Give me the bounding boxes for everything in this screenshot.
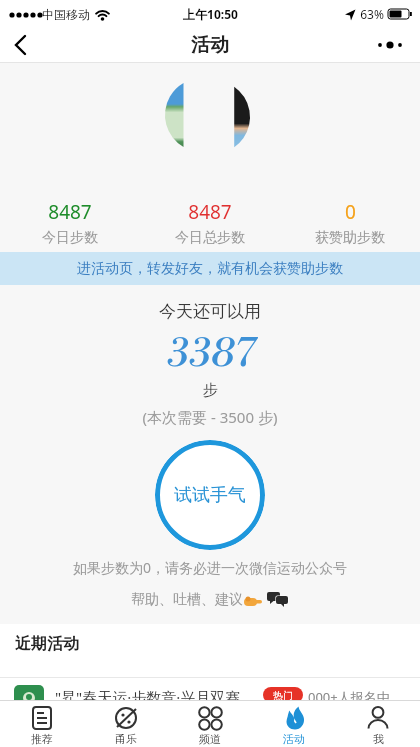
staticText: 进活动页，转发好友，就有机会获赞助步数 bbox=[77, 260, 343, 278]
staticText: 000+人报名中 bbox=[308, 688, 390, 706]
staticText: 0 bbox=[345, 199, 356, 225]
staticText: 近期活动 bbox=[15, 634, 79, 654]
staticText: 甬乐 bbox=[115, 732, 137, 746]
staticText: 8487 bbox=[188, 199, 232, 225]
staticText: 我 bbox=[373, 732, 384, 746]
staticText: "昇"春天运·步数竞·兴月双赛 bbox=[55, 687, 241, 707]
button[interactable]: 甬乐 bbox=[84, 701, 168, 747]
staticText: 中国移动 bbox=[42, 7, 90, 22]
staticText: 今天还可以用 bbox=[0, 301, 420, 322]
staticText: 帮助、吐槽、建议 bbox=[131, 591, 243, 609]
staticText: 今日总步数 bbox=[175, 229, 245, 247]
button[interactable]: 我 bbox=[336, 701, 420, 747]
staticText: 上午10:50 bbox=[183, 6, 238, 22]
button[interactable]: 试试手气 bbox=[155, 440, 265, 550]
staticText: 3387 bbox=[0, 329, 420, 379]
button[interactable]: 推荐 bbox=[0, 701, 84, 747]
staticText: 如果步数为0，请务必进一次微信运动公众号 bbox=[0, 558, 420, 577]
button[interactable]: 活动 bbox=[252, 701, 336, 747]
staticText: 试试手气 bbox=[174, 484, 246, 507]
staticText: 推荐 bbox=[31, 732, 53, 746]
button[interactable]: 频道 bbox=[168, 701, 252, 747]
staticText: 热门 bbox=[273, 689, 293, 702]
staticText: 活动 bbox=[191, 33, 229, 57]
button[interactable] bbox=[6, 30, 36, 60]
staticText: 获赞助步数 bbox=[315, 229, 385, 247]
button[interactable]: 进活动页，转发好友，就有机会获赞助步数 bbox=[0, 252, 420, 285]
button[interactable]: "昇"春天运·步数竞·兴月双赛 bbox=[0, 684, 420, 747]
staticText: 活动 bbox=[283, 732, 305, 746]
staticText: 8487 bbox=[48, 199, 92, 225]
staticText: 63% bbox=[360, 6, 384, 22]
staticText: (本次需要 - 3500 步) bbox=[0, 407, 420, 427]
staticText: 今日步数 bbox=[42, 229, 98, 247]
staticText: 频道 bbox=[199, 732, 221, 746]
staticText: 步 bbox=[0, 381, 420, 400]
button[interactable] bbox=[375, 35, 409, 55]
